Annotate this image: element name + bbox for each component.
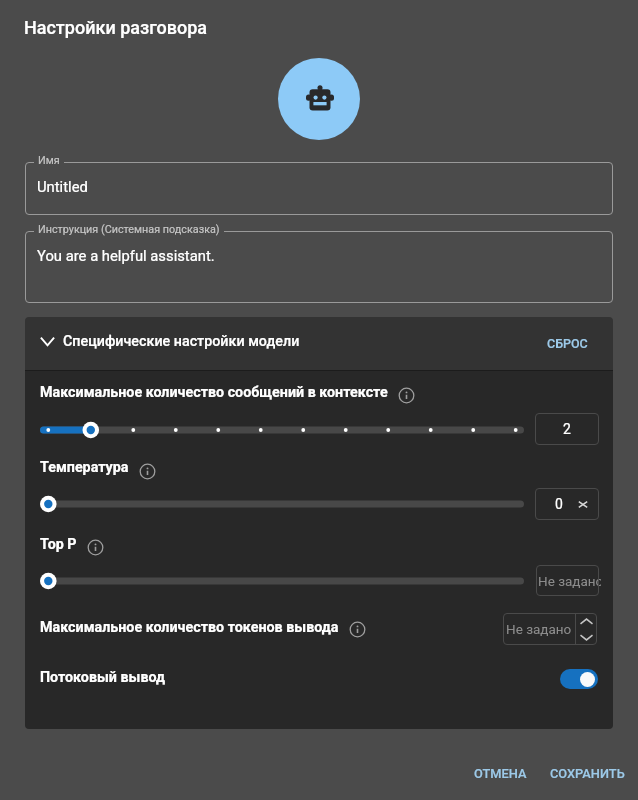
staticText: Имя [38, 154, 60, 167]
staticText: Untitled [37, 178, 88, 195]
button[interactable]: Collapse section [25, 317, 613, 370]
button[interactable]: Slider [38, 567, 526, 595]
button[interactable]: Не задано [503, 613, 575, 645]
staticText: Не задано [506, 621, 572, 637]
button[interactable]: СОХРАНИТЬ [534, 755, 638, 792]
button[interactable]: Increase [579, 616, 594, 627]
button[interactable]: СБРОС [531, 325, 604, 362]
button[interactable]: Slider [38, 416, 526, 444]
button[interactable]: Info [397, 386, 415, 404]
other: Clear [578, 501, 588, 508]
button[interactable]: Avatar [278, 58, 360, 140]
other: Collapse section [33, 327, 61, 355]
button[interactable]: Decrease [579, 632, 594, 643]
staticText: 0 [555, 496, 563, 512]
button[interactable]: You are a helpful assistant. [25, 231, 613, 303]
staticText: ОТМЕНА [474, 766, 527, 781]
staticText: Настройки разговора [24, 17, 207, 38]
button[interactable]: Не задано [536, 565, 599, 596]
button[interactable]: 2 [535, 413, 599, 445]
staticText: СОХРАНИТЬ [550, 766, 625, 781]
staticText: Специфические настройки модели [63, 333, 300, 350]
staticText: 2 [563, 421, 571, 437]
staticText: You are a helpful assistant. [37, 247, 215, 264]
button[interactable]: Untitled [25, 162, 613, 215]
staticText: СБРОС [547, 336, 588, 351]
staticText: Инструкция (Системная подсказка) [38, 223, 220, 236]
staticText: Температура [40, 459, 129, 476]
button[interactable]: 0 [535, 488, 599, 520]
button[interactable]: Info [348, 620, 366, 638]
button[interactable]: Streaming output toggle [560, 669, 598, 689]
staticText: Top P [40, 536, 77, 553]
staticText: Не задано [538, 573, 601, 589]
staticText: Потоковый вывод [40, 669, 166, 686]
button[interactable]: ОТМЕНА [458, 755, 543, 792]
button[interactable]: Info [86, 538, 104, 556]
button[interactable]: Info [138, 462, 156, 480]
staticText: Максимальное количество токенов вывода [40, 619, 339, 636]
staticText: Максимальное количество сообщений в конт… [40, 384, 388, 401]
button[interactable]: Slider [38, 490, 526, 518]
